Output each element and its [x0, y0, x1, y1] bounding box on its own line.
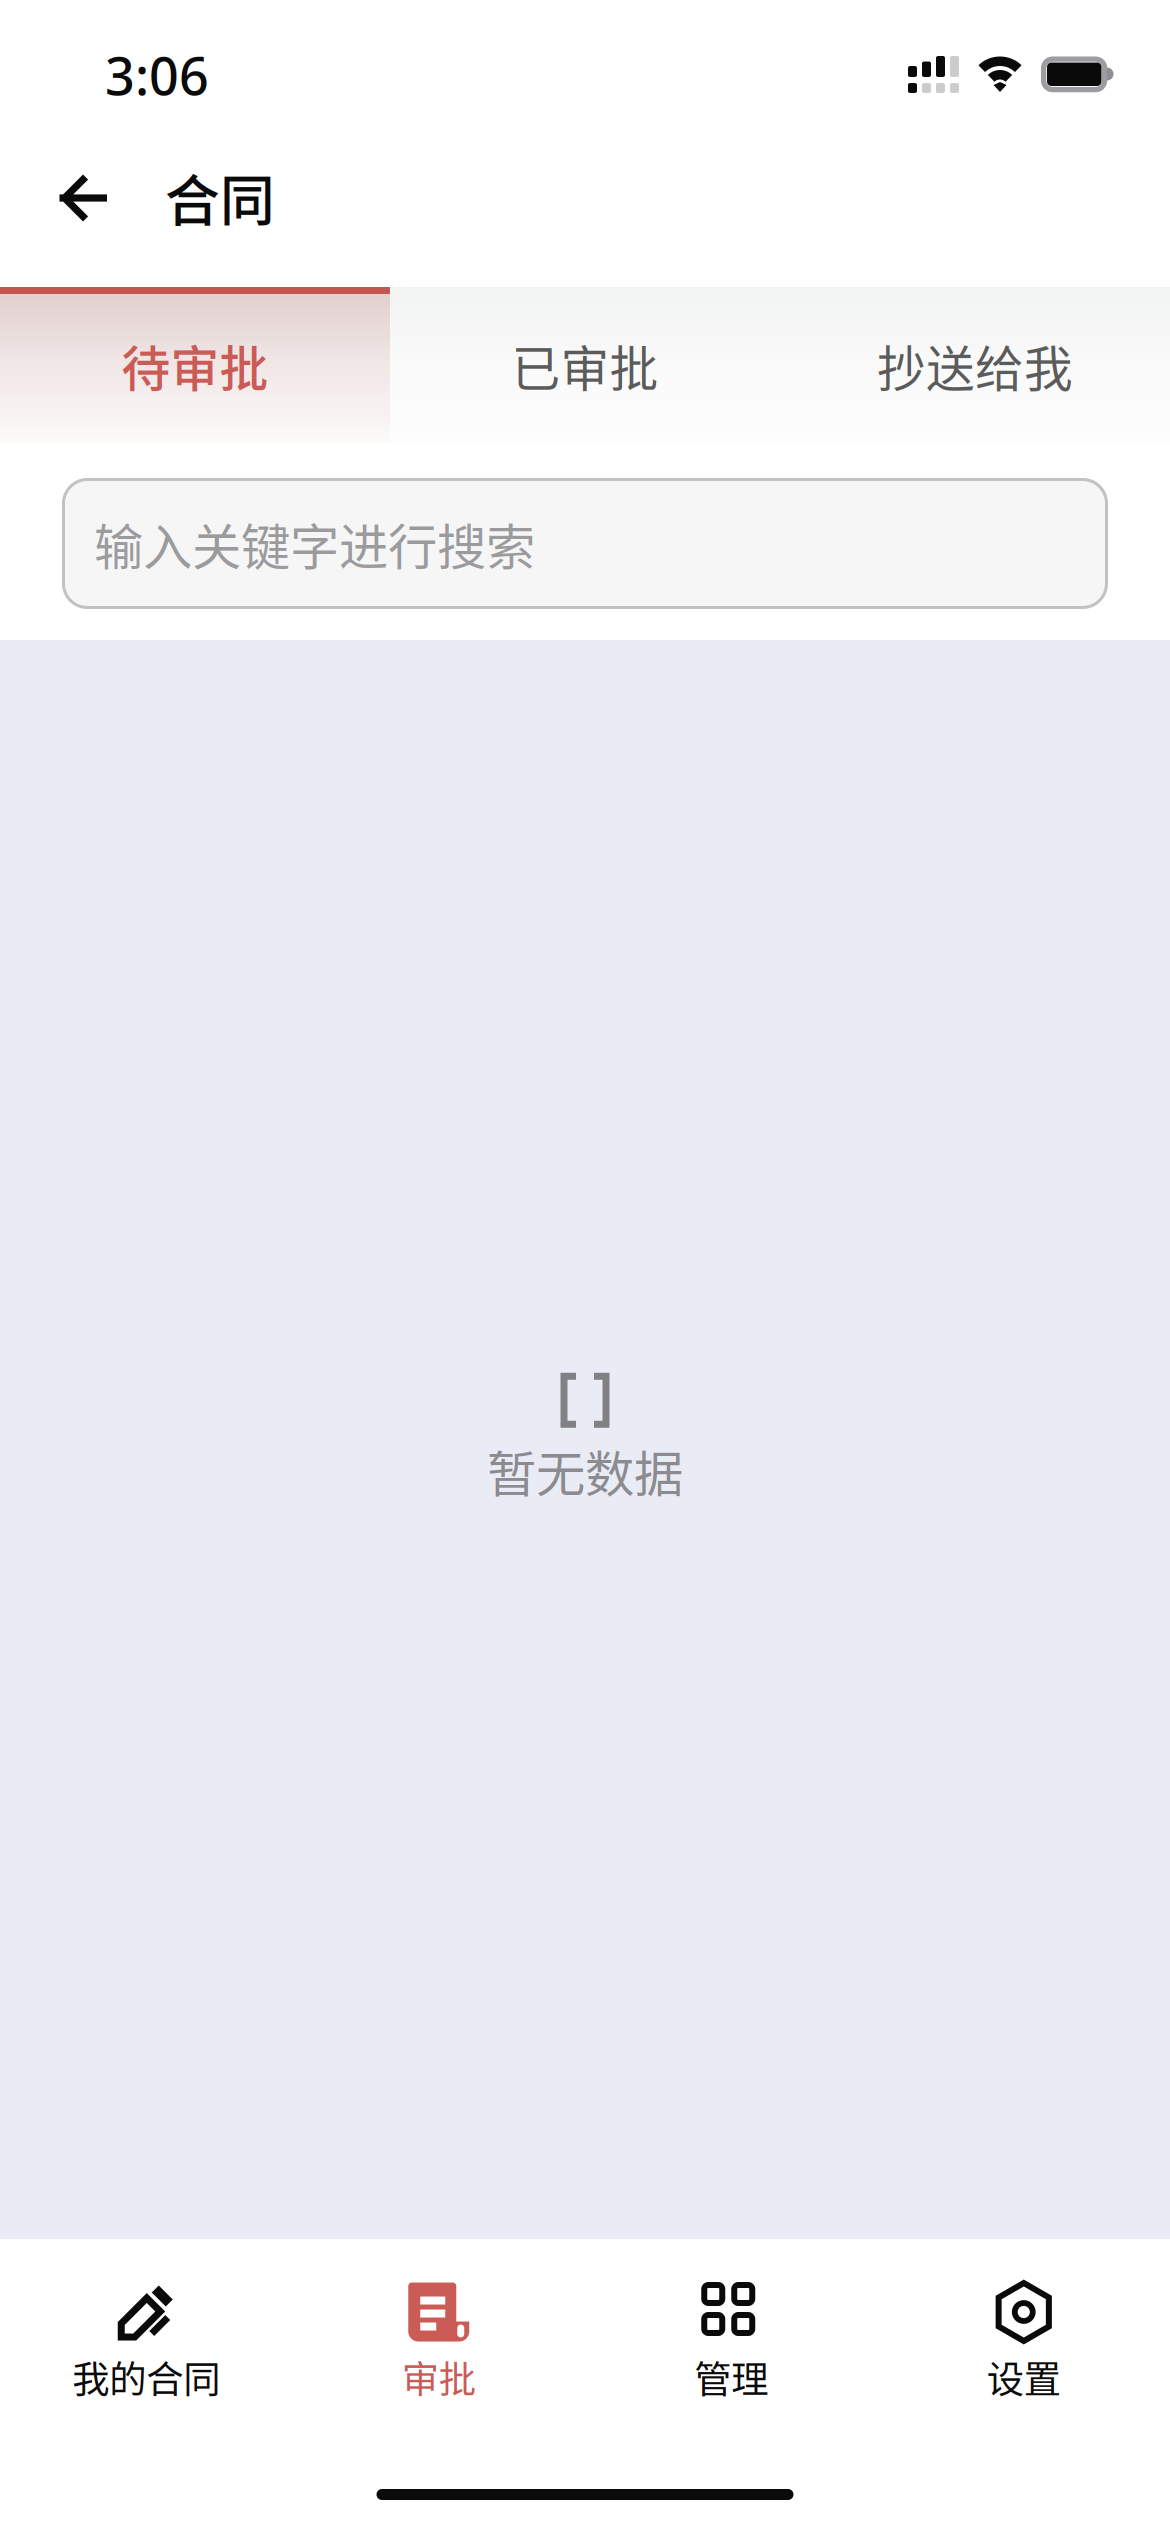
- staticText: 暂无数据: [487, 1435, 683, 1506]
- staticText: 已审批: [511, 330, 658, 401]
- button[interactable]: 输入关键字进行搜索: [62, 478, 1108, 609]
- staticText: 抄送给我: [877, 330, 1073, 401]
- staticText: 待审批: [121, 330, 268, 401]
- button[interactable]: 管理: [585, 2239, 877, 2431]
- staticText: 我的合同: [72, 2350, 220, 2404]
- staticText: 合同: [165, 157, 275, 236]
- button[interactable]: Back: [0, 141, 165, 287]
- button[interactable]: 已审批: [390, 287, 780, 444]
- button[interactable]: 审批: [292, 2239, 585, 2431]
- button[interactable]: 设置: [877, 2239, 1170, 2431]
- staticText: 审批: [402, 2350, 476, 2404]
- staticText: 设置: [987, 2350, 1061, 2404]
- staticText: 管理: [694, 2350, 768, 2404]
- button[interactable]: 待审批: [0, 287, 390, 444]
- staticText: 3:06: [105, 40, 209, 110]
- button[interactable]: 我的合同: [0, 2239, 292, 2431]
- staticText: 输入关键字进行搜索: [94, 508, 535, 579]
- button[interactable]: 抄送给我: [780, 287, 1170, 444]
